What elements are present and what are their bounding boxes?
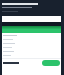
button[interactable] (42, 60, 60, 66)
